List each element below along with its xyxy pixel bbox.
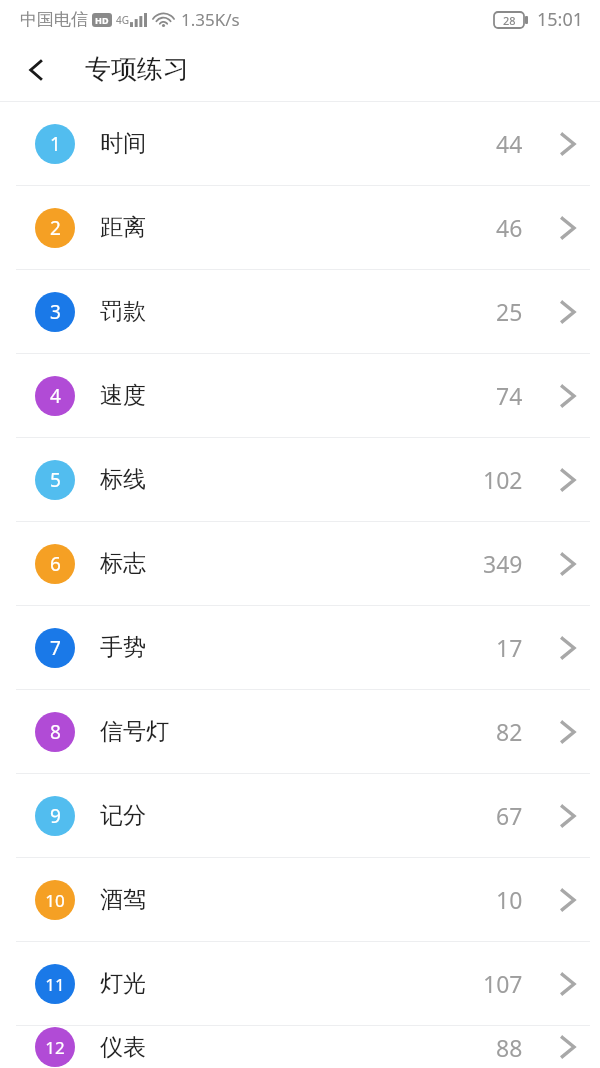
button[interactable]: 10 — [0, 858, 600, 941]
staticText: 中国电信 — [20, 9, 88, 30]
button[interactable]: 11 — [0, 942, 600, 1025]
button[interactable]: 1 — [0, 102, 600, 185]
staticText: 1.35K/s — [181, 8, 240, 31]
staticText: 11 — [45, 973, 65, 996]
staticText: 记分 — [100, 801, 146, 830]
staticText: 28 — [503, 13, 516, 28]
staticText: 17 — [496, 632, 523, 663]
staticText: 12 — [45, 1036, 65, 1059]
button[interactable]: 7 — [0, 606, 600, 689]
staticText: 25 — [496, 296, 523, 327]
staticText: 罚款 — [100, 297, 146, 326]
staticText: 6 — [50, 551, 61, 577]
staticText: 速度 — [100, 381, 146, 410]
button[interactable]: 3 — [0, 270, 600, 353]
button[interactable]: 5 — [0, 438, 600, 521]
staticText: 1 — [50, 131, 61, 157]
staticText: 46 — [496, 212, 523, 243]
staticText: 仪表 — [100, 1033, 146, 1062]
staticText: 10 — [496, 884, 523, 915]
button[interactable]: 4 — [0, 354, 600, 437]
staticText: 8 — [50, 719, 61, 745]
staticText: 5 — [50, 467, 61, 493]
staticText: 67 — [496, 800, 523, 831]
staticText: 9 — [50, 803, 61, 829]
button[interactable]: 9 — [0, 774, 600, 857]
staticText: 4G — [116, 13, 129, 27]
staticText: 7 — [50, 635, 61, 661]
staticText: 标线 — [100, 465, 146, 494]
staticText: 88 — [496, 1032, 523, 1063]
staticText: 4 — [50, 383, 61, 409]
button[interactable]: 8 — [0, 690, 600, 773]
staticText: 酒驾 — [100, 885, 146, 914]
staticText: 标志 — [100, 549, 146, 578]
staticText: 82 — [496, 716, 523, 747]
staticText: 手势 — [100, 633, 146, 662]
staticText: 102 — [483, 464, 523, 495]
staticText: 44 — [496, 128, 523, 159]
staticText: HD — [95, 14, 109, 26]
staticText: 74 — [496, 380, 523, 411]
staticText: 349 — [483, 548, 523, 579]
staticText: 15:01 — [537, 7, 584, 32]
staticText: 2 — [50, 215, 61, 241]
staticText: 10 — [45, 889, 65, 912]
button[interactable]: 12 — [0, 1026, 600, 1068]
button[interactable]: 2 — [0, 186, 600, 269]
staticText: 灯光 — [100, 969, 146, 998]
staticText: 专项练习 — [85, 53, 189, 86]
button[interactable]: Back — [10, 44, 62, 96]
staticText: 107 — [483, 968, 523, 999]
button[interactable]: 6 — [0, 522, 600, 605]
staticText: 3 — [50, 299, 61, 325]
staticText: 距离 — [100, 213, 146, 242]
staticText: 信号灯 — [100, 717, 169, 746]
staticText: 时间 — [100, 129, 146, 158]
